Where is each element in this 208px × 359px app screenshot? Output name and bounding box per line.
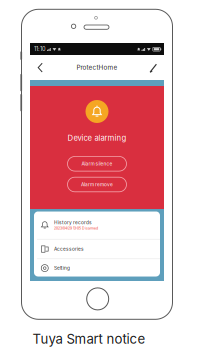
staticText: History records	[54, 219, 92, 225]
button[interactable]: Edit	[146, 55, 160, 80]
button[interactable]: History records	[34, 211, 160, 239]
staticText: 2023/04/29 13:05 Disarmed	[54, 226, 98, 230]
staticText: 11:10	[34, 46, 46, 52]
staticText: Accessories	[54, 246, 84, 252]
button[interactable]: Alarm remove	[67, 177, 126, 192]
staticText: ProtectHome	[76, 64, 117, 71]
staticText: Tuya Smart notice	[32, 331, 145, 347]
button[interactable]: Accessories	[34, 239, 160, 258]
button[interactable]: Back	[34, 55, 48, 80]
staticText: Alarm remove	[81, 182, 113, 187]
staticText: Device alarming	[67, 133, 126, 143]
staticText: Alarm silence	[81, 161, 112, 167]
staticText: Setting	[54, 265, 70, 271]
button[interactable]: Alarm silence	[67, 156, 126, 171]
button[interactable]: Setting	[34, 259, 160, 277]
